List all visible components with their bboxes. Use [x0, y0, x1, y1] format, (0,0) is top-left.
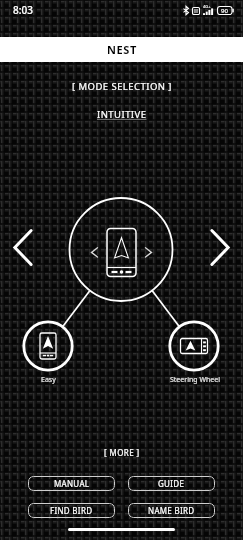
- staticText: MANUAL: [54, 478, 90, 489]
- button[interactable]: MANUAL: [28, 476, 115, 491]
- staticText: GUIDE: [158, 478, 185, 489]
- button[interactable]: GUIDE: [128, 476, 215, 491]
- button[interactable]: INTUITIVE: [97, 108, 147, 121]
- staticText: 8:03: [13, 3, 33, 17]
- staticText: 90: [221, 7, 228, 15]
- staticText: [ MODE SELECTION ]: [72, 80, 172, 93]
- button[interactable]: FIND BIRD: [28, 503, 115, 518]
- staticText: NAME BIRD: [148, 505, 195, 516]
- staticText: NEST: [107, 42, 137, 57]
- staticText: Easy: [41, 375, 56, 385]
- button[interactable]: NAME BIRD: [128, 503, 215, 518]
- button[interactable]: Steering Wheel: [155, 375, 235, 385]
- staticText: 4G+: [203, 4, 211, 9]
- button[interactable]: Easy: [8, 375, 88, 385]
- staticText: Steering Wheel: [170, 375, 220, 385]
- staticText: [ MORE ]: [104, 447, 140, 458]
- staticText: FIND BIRD: [50, 505, 93, 516]
